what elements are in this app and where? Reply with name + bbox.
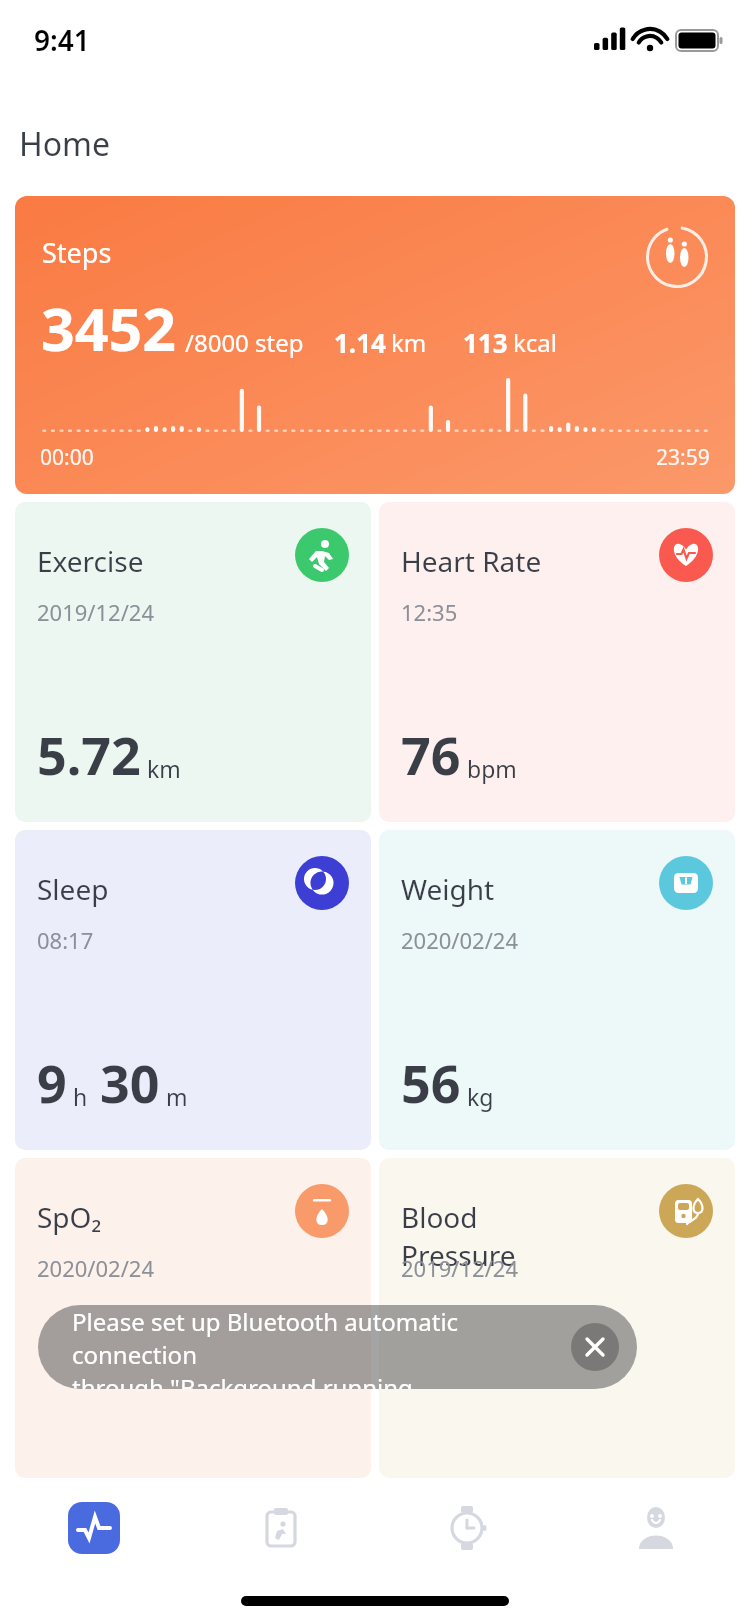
staticText: Sleep (37, 870, 109, 908)
button[interactable]: SpO₂ (15, 1158, 371, 1478)
staticText: 113 (463, 325, 508, 360)
button[interactable]: Close (571, 1323, 619, 1371)
button[interactable]: Heart Rate (379, 502, 735, 822)
staticText: Blood Pressure (401, 1198, 516, 1274)
button[interactable]: Steps (15, 196, 735, 494)
staticText: 23:59 (656, 443, 710, 472)
button[interactable]: Exercise (15, 502, 371, 822)
staticText: 12:35 (401, 597, 458, 627)
button[interactable]: Records (187, 1478, 374, 1578)
staticText: Home (19, 122, 111, 166)
staticText: 2019/12/24 (401, 1253, 519, 1283)
staticText: kcal (513, 326, 557, 359)
button[interactable]: Weight (379, 830, 735, 1150)
staticText: 2020/02/24 (401, 925, 519, 955)
button[interactable]: Device (374, 1478, 562, 1578)
button[interactable]: Blood Pressure (379, 1158, 735, 1478)
staticText: Exercise (37, 542, 144, 580)
staticText: SpO₂ (37, 1198, 102, 1236)
staticText: Weight (401, 870, 495, 908)
staticText: 76 (401, 719, 461, 790)
staticText: Heart Rate (401, 542, 542, 580)
staticText: /8000 step (185, 326, 304, 359)
staticText: km (147, 753, 181, 784)
button[interactable]: Health (0, 1478, 187, 1578)
staticText: m (166, 1081, 188, 1112)
staticText: 9 (37, 1047, 67, 1118)
staticText: h (73, 1081, 88, 1112)
button[interactable]: Steps detail (646, 226, 708, 288)
staticText: 00:00 (40, 443, 94, 472)
staticText: 2019/12/24 (37, 597, 155, 627)
staticText: 30 (100, 1047, 160, 1118)
staticText: 9:41 (34, 21, 90, 59)
staticText: 2020/02/24 (37, 1253, 155, 1283)
staticText: km (391, 326, 427, 359)
staticText: bpm (467, 753, 517, 784)
staticText: kg (467, 1081, 494, 1112)
staticText: 5.72 (37, 719, 141, 790)
staticText: 08:17 (37, 925, 94, 955)
staticText: 1.14 (334, 325, 386, 360)
button[interactable]: Profile (562, 1478, 750, 1578)
staticText: Steps (42, 234, 112, 271)
staticText: Please set up Bluetooth automatic connec… (72, 1305, 545, 1389)
staticText: 3452 (41, 288, 176, 368)
staticText: 56 (401, 1047, 461, 1118)
button[interactable]: Sleep (15, 830, 371, 1150)
